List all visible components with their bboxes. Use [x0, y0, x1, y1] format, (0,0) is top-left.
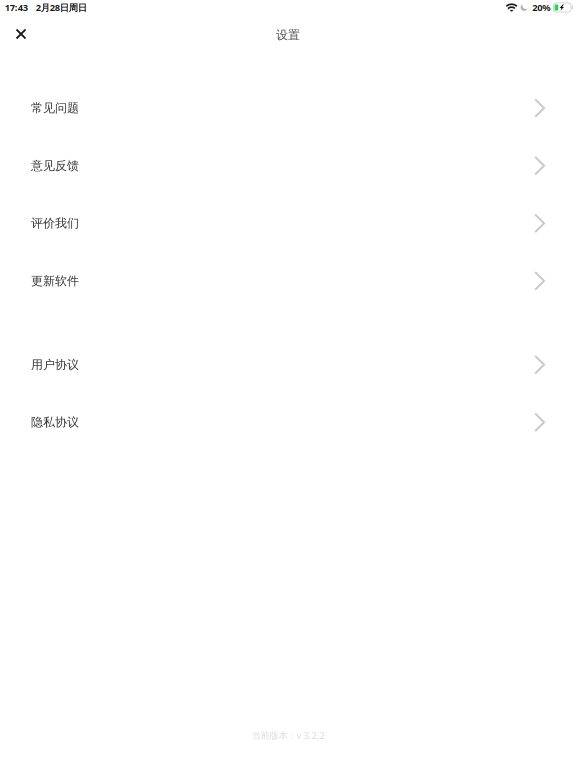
staticText: 用户协议: [31, 357, 79, 372]
button[interactable]: 评价我们: [0, 194, 576, 252]
button[interactable]: 隐私协议: [0, 393, 576, 451]
button[interactable]: 用户协议: [0, 336, 576, 393]
staticText: 20%: [532, 1, 550, 14]
button[interactable]: 常见问题: [0, 79, 576, 137]
staticText: 2月28日周日: [36, 1, 87, 14]
button[interactable]: Close: [4, 18, 38, 52]
staticText: 常见问题: [31, 101, 79, 115]
staticText: 隐私协议: [31, 415, 79, 430]
staticText: 更新软件: [31, 273, 79, 288]
button[interactable]: 更新软件: [0, 252, 576, 310]
staticText: 当前版本：v 3.2.2: [251, 729, 324, 741]
button[interactable]: 意见反馈: [0, 137, 576, 194]
staticText: 17:43: [5, 1, 28, 14]
staticText: 意见反馈: [31, 158, 79, 173]
staticText: 设置: [276, 28, 300, 42]
staticText: 评价我们: [31, 216, 79, 231]
